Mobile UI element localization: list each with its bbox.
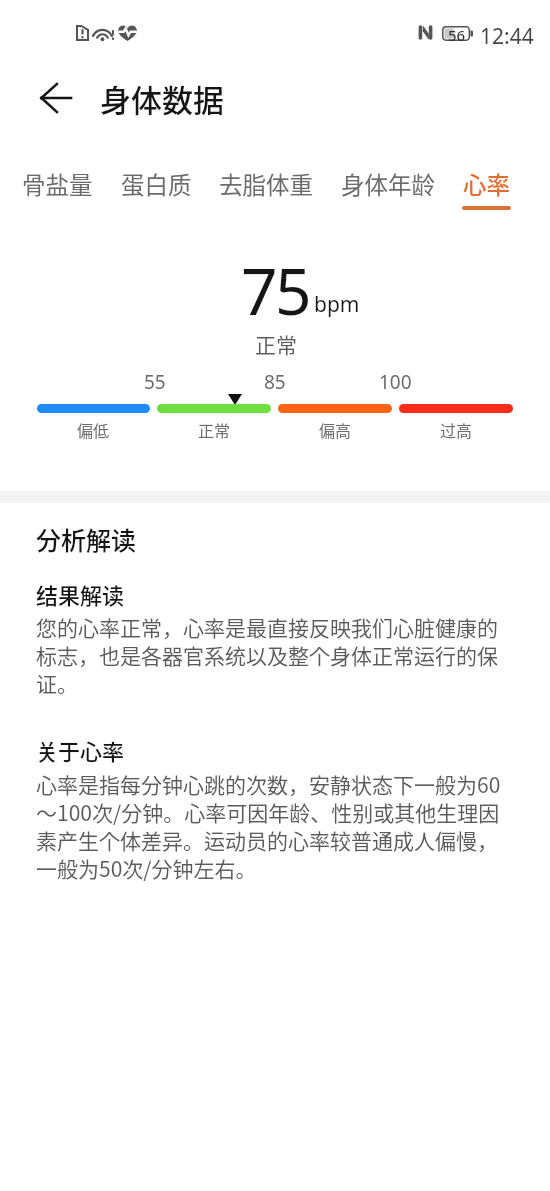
staticText: 85 [264,369,286,395]
staticText: 100 [379,369,412,395]
staticText: 心率是指每分钟心跳的次数，安静状态下一般为60～100次/分钟。心率可因年龄、性… [36,769,514,883]
staticText: 56 [448,25,466,45]
staticText: 关于心率 [36,734,125,766]
staticText: 过高 [440,418,473,441]
staticText: 结果解读 [36,578,125,610]
staticText: 75 [241,247,310,334]
staticText: 心率 [463,167,510,201]
button[interactable]: 蛋白质 [121,167,192,206]
staticText: 身体数据 [100,76,224,121]
staticText: bpm [314,290,360,319]
staticText: 去脂体重 [219,167,313,201]
button[interactable]: Back [24,66,88,130]
staticText: 您的心率正常，心率是最直接反映我们心脏健康的标志，也是各器官系统以及整个身体正常… [36,612,514,698]
button[interactable]: 骨盐量 [22,167,93,206]
staticText: 身体年龄 [341,167,435,201]
staticText: 分析解读 [36,521,137,557]
button[interactable]: 身体年龄 [341,167,435,206]
staticText: 骨盐量 [22,167,93,201]
button[interactable]: 心率 [462,167,511,210]
staticText: 正常 [198,418,231,441]
staticText: 蛋白质 [121,167,192,201]
staticText: 偏低 [77,418,110,441]
staticText: 55 [144,369,166,395]
button[interactable]: 去脂体重 [219,167,313,206]
staticText: 12:44 [480,22,534,51]
staticText: 正常 [255,329,297,359]
staticText: 偏高 [319,418,352,441]
